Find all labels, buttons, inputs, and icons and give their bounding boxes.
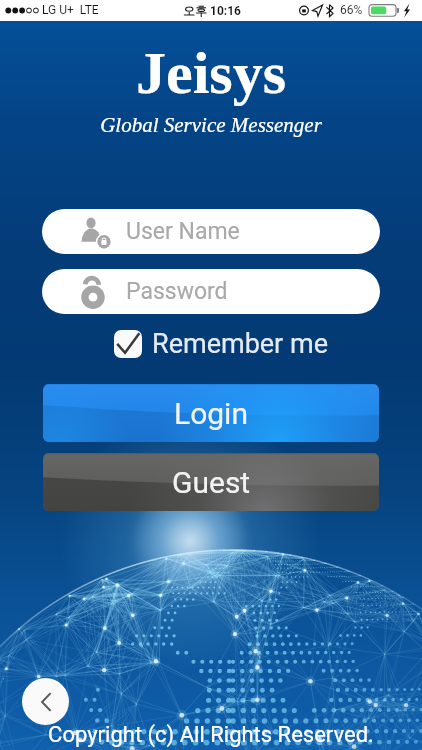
staticText: 오후 10:16: [1, 3, 422, 18]
button[interactable]: Password: [42, 269, 380, 314]
staticText: 66%: [340, 3, 363, 17]
button[interactable]: Back: [22, 678, 69, 725]
staticText: User Name: [126, 218, 240, 245]
staticText: Guest: [172, 465, 251, 500]
staticText: Copyright (c) All Rights Reserved.: [0, 722, 422, 748]
button[interactable]: Remember me: [19, 328, 422, 360]
staticText: Password: [126, 278, 228, 305]
staticText: Jeisys: [0, 40, 422, 106]
staticText: Remember me: [152, 328, 328, 360]
staticText: LG U+ LTE: [42, 3, 99, 17]
button[interactable]: User Name: [42, 209, 380, 254]
button[interactable]: Guest: [43, 453, 379, 511]
button[interactable]: Login: [43, 384, 379, 442]
staticText: Login: [174, 396, 248, 431]
staticText: Global Service Messenger: [0, 113, 422, 136]
